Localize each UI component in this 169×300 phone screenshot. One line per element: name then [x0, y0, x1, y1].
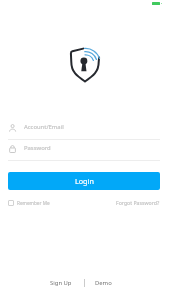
button[interactable]: Account/Email — [8, 116, 160, 140]
button[interactable]: Password — [8, 137, 160, 161]
button[interactable]: Forgot Password? — [100, 197, 160, 208]
staticText: Password — [24, 144, 51, 152]
staticText: Account/Email — [24, 123, 64, 131]
staticText: Login — [75, 176, 94, 186]
staticText: Forgot Password? — [116, 199, 160, 206]
button[interactable]: Sign Up — [48, 278, 72, 288]
staticText: Sign Up — [50, 279, 72, 287]
button[interactable]: Login — [8, 172, 160, 190]
button[interactable]: Remember Me — [8, 197, 160, 208]
staticText: Remember Me — [17, 200, 50, 206]
button[interactable]: Demo — [95, 278, 119, 288]
staticText: Demo — [95, 279, 112, 287]
